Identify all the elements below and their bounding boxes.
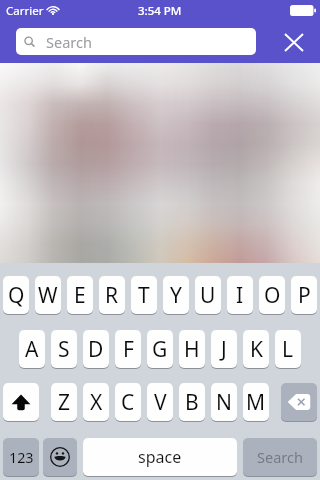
button[interactable]: Y [163, 276, 189, 314]
staticText: A [25, 335, 39, 364]
staticText: K [250, 335, 263, 364]
button[interactable]: P [291, 276, 317, 314]
button[interactable]: C [115, 383, 141, 421]
button[interactable]: M [243, 383, 269, 421]
button[interactable]: N [211, 383, 237, 421]
staticText: B [185, 388, 199, 417]
button[interactable]: O [259, 276, 285, 314]
button[interactable]: A [19, 330, 45, 368]
staticText: N [216, 388, 232, 417]
staticText: Search [46, 32, 92, 52]
staticText: E [74, 281, 86, 310]
staticText: I [236, 281, 244, 310]
button[interactable]: space [83, 438, 237, 476]
staticText: V [154, 388, 167, 417]
staticText: J [221, 335, 227, 364]
button[interactable]: Search [243, 438, 317, 476]
staticText: R [105, 281, 119, 310]
button[interactable]: W [35, 276, 61, 314]
staticText: D [88, 335, 104, 364]
button[interactable]: G [147, 330, 173, 368]
button[interactable]: V [147, 383, 173, 421]
staticText: Carrier [6, 3, 44, 19]
button[interactable]: Emoji [43, 438, 77, 476]
staticText: X [90, 388, 103, 417]
button[interactable]: Shift [3, 383, 39, 421]
button[interactable]: H [179, 330, 205, 368]
staticText: W [38, 281, 58, 310]
staticText: S [58, 335, 70, 364]
button[interactable]: U [195, 276, 221, 314]
staticText: G [152, 335, 168, 364]
button[interactable]: Z [51, 383, 77, 421]
staticText: space [138, 446, 182, 468]
button[interactable]: 123 [3, 438, 39, 476]
staticText: Q [8, 281, 25, 310]
button[interactable]: X [83, 383, 109, 421]
button[interactable]: R [99, 276, 125, 314]
staticText: H [184, 335, 200, 364]
button[interactable]: L [275, 330, 301, 368]
button[interactable]: F [115, 330, 141, 368]
staticText: O [264, 281, 281, 310]
button[interactable]: S [51, 330, 77, 368]
button[interactable]: B [179, 383, 205, 421]
staticText: M [246, 388, 266, 417]
staticText: Y [170, 281, 182, 310]
staticText: P [298, 281, 311, 310]
button[interactable]: Q [3, 276, 29, 314]
staticText: T [138, 281, 150, 310]
button[interactable]: E [67, 276, 93, 314]
staticText: F [123, 335, 134, 364]
staticText: C [121, 388, 135, 417]
button[interactable]: Search [16, 28, 256, 55]
staticText: 123 [9, 448, 34, 467]
button[interactable]: I [227, 276, 253, 314]
button[interactable]: J [211, 330, 237, 368]
button[interactable]: T [131, 276, 157, 314]
staticText: 3:54 PM [138, 3, 182, 19]
button[interactable]: Close search [274, 26, 314, 58]
staticText: L [282, 335, 294, 364]
staticText: Search [257, 447, 303, 467]
button[interactable]: K [243, 330, 269, 368]
button[interactable]: D [83, 330, 109, 368]
staticText: Z [58, 388, 71, 417]
staticText: U [200, 281, 216, 310]
button[interactable]: Backspace [281, 383, 317, 421]
